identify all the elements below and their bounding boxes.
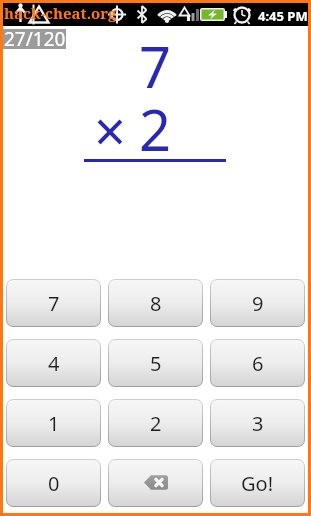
staticText: 27/120 xyxy=(4,26,66,46)
button[interactable]: 3 xyxy=(210,399,305,447)
staticText: 1 xyxy=(48,410,60,437)
staticText: Go! xyxy=(241,470,274,497)
staticText: × xyxy=(94,92,127,168)
staticText: 4 xyxy=(48,350,60,377)
button[interactable]: 6 xyxy=(210,339,305,387)
staticText: 2 xyxy=(150,410,162,437)
staticText: 5 xyxy=(150,350,162,377)
button[interactable]: 9 xyxy=(210,279,305,327)
staticText: 9 xyxy=(252,290,264,317)
button[interactable] xyxy=(108,459,203,507)
button[interactable]: 4 xyxy=(6,339,101,387)
staticText: 4:45 PM xyxy=(258,7,308,25)
button[interactable]: 8 xyxy=(108,279,203,327)
staticText: 7 xyxy=(48,290,60,317)
button[interactable]: 2 xyxy=(108,399,203,447)
staticText: 2 xyxy=(139,91,172,167)
button[interactable]: 1 xyxy=(6,399,101,447)
button[interactable]: Go! xyxy=(210,459,305,507)
button[interactable]: 5 xyxy=(108,339,203,387)
button[interactable]: 7 xyxy=(6,279,101,327)
button[interactable]: 0 xyxy=(6,459,101,507)
staticText: 0 xyxy=(48,470,60,497)
staticText: 3 xyxy=(252,410,264,437)
staticText: 7 xyxy=(139,28,172,104)
staticText: hack-cheat.org xyxy=(4,3,117,23)
staticText: 8 xyxy=(150,290,162,317)
staticText: 6 xyxy=(252,350,264,377)
